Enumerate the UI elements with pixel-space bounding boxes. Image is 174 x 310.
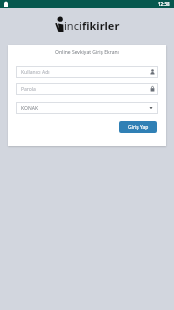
staticText: Online Sevkiyat Giriş Ekranı [16, 49, 158, 56]
button[interactable]: KONAK [16, 102, 158, 114]
button[interactable]: Giriş Yap [119, 121, 157, 133]
staticText: KONAK [21, 105, 38, 112]
button[interactable]: Username field [16, 66, 158, 78]
staticText: 12:38 [158, 1, 170, 7]
staticText: Parola [21, 86, 36, 93]
staticText: Giriş Yap [128, 124, 149, 131]
staticText: inci [64, 18, 82, 33]
button[interactable]: Password field [16, 83, 158, 95]
staticText: fikirler [82, 18, 120, 33]
staticText: Kullanıcı Adı [21, 69, 50, 76]
